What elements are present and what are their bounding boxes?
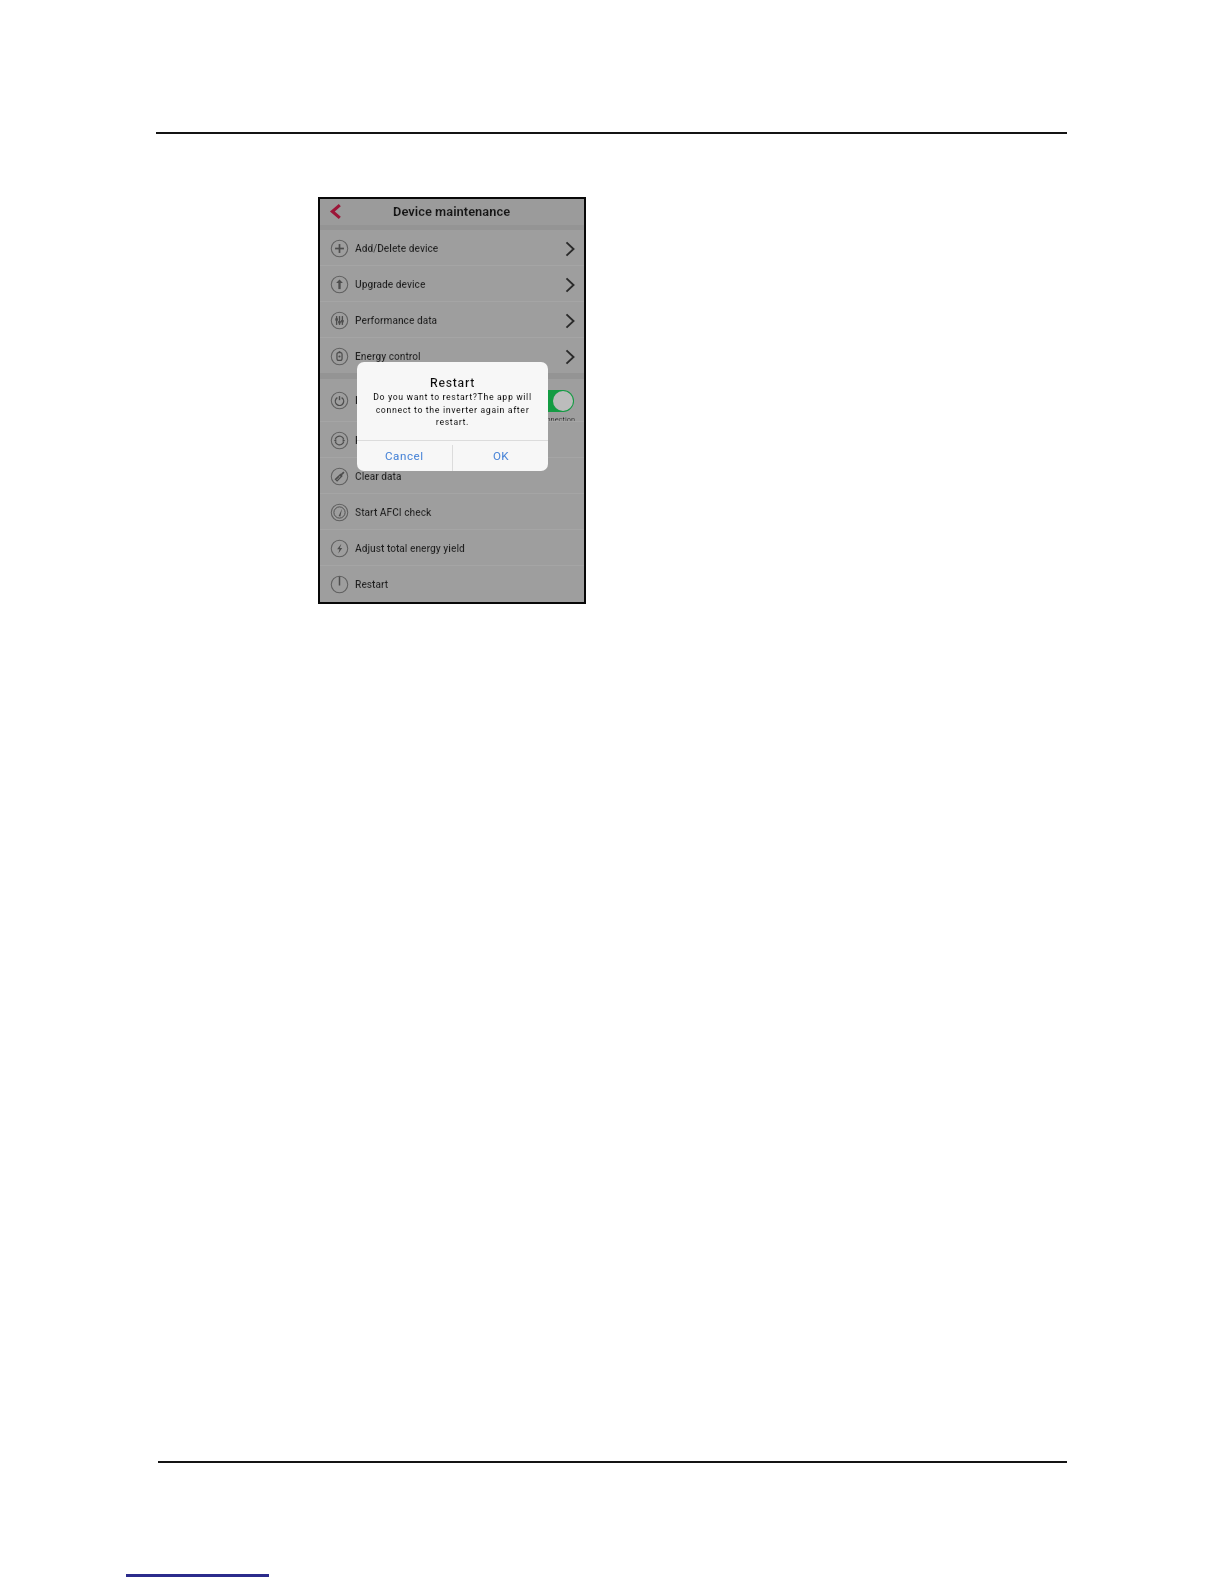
button[interactable]: Back (331, 204, 342, 219)
button[interactable]: Start AFCI check (320, 494, 584, 529)
staticText: Inverter ON/OFF (355, 395, 430, 407)
button[interactable]: Add/Delete device (320, 230, 584, 265)
staticText: Restart (430, 376, 476, 390)
button[interactable]: OK (453, 441, 548, 471)
button[interactable]: Inverter on/off switch (534, 390, 574, 412)
staticText: Performance data (355, 315, 438, 327)
staticText: Adjust total energy yield (355, 543, 465, 555)
staticText: Do you want to restart?The app will conn… (373, 392, 532, 427)
button[interactable]: Cancel (357, 441, 452, 471)
button[interactable]: Restart (320, 566, 584, 601)
staticText: Add/Delete device (355, 243, 439, 255)
staticText: Reconnection (355, 435, 418, 447)
staticText: Upgrade device (355, 279, 426, 291)
staticText: Inverter connection (320, 415, 575, 424)
button[interactable]: Inverter ON/OFF (320, 379, 584, 421)
staticText: Start AFCI check (355, 507, 432, 519)
staticText: Device maintenance (393, 204, 511, 219)
staticText: Energy control (355, 351, 421, 363)
staticText: Cancel (385, 449, 424, 463)
staticText: Clear data (355, 471, 402, 483)
button[interactable]: Performance data (320, 302, 584, 337)
button[interactable]: Energy control (320, 338, 584, 373)
staticText: Restart (355, 579, 389, 591)
button[interactable]: Adjust total energy yield (320, 530, 584, 565)
button[interactable]: Upgrade device (320, 266, 584, 301)
button[interactable]: Reconnection (320, 422, 584, 457)
staticText: OK (493, 449, 509, 463)
button[interactable]: Clear data (320, 458, 584, 493)
